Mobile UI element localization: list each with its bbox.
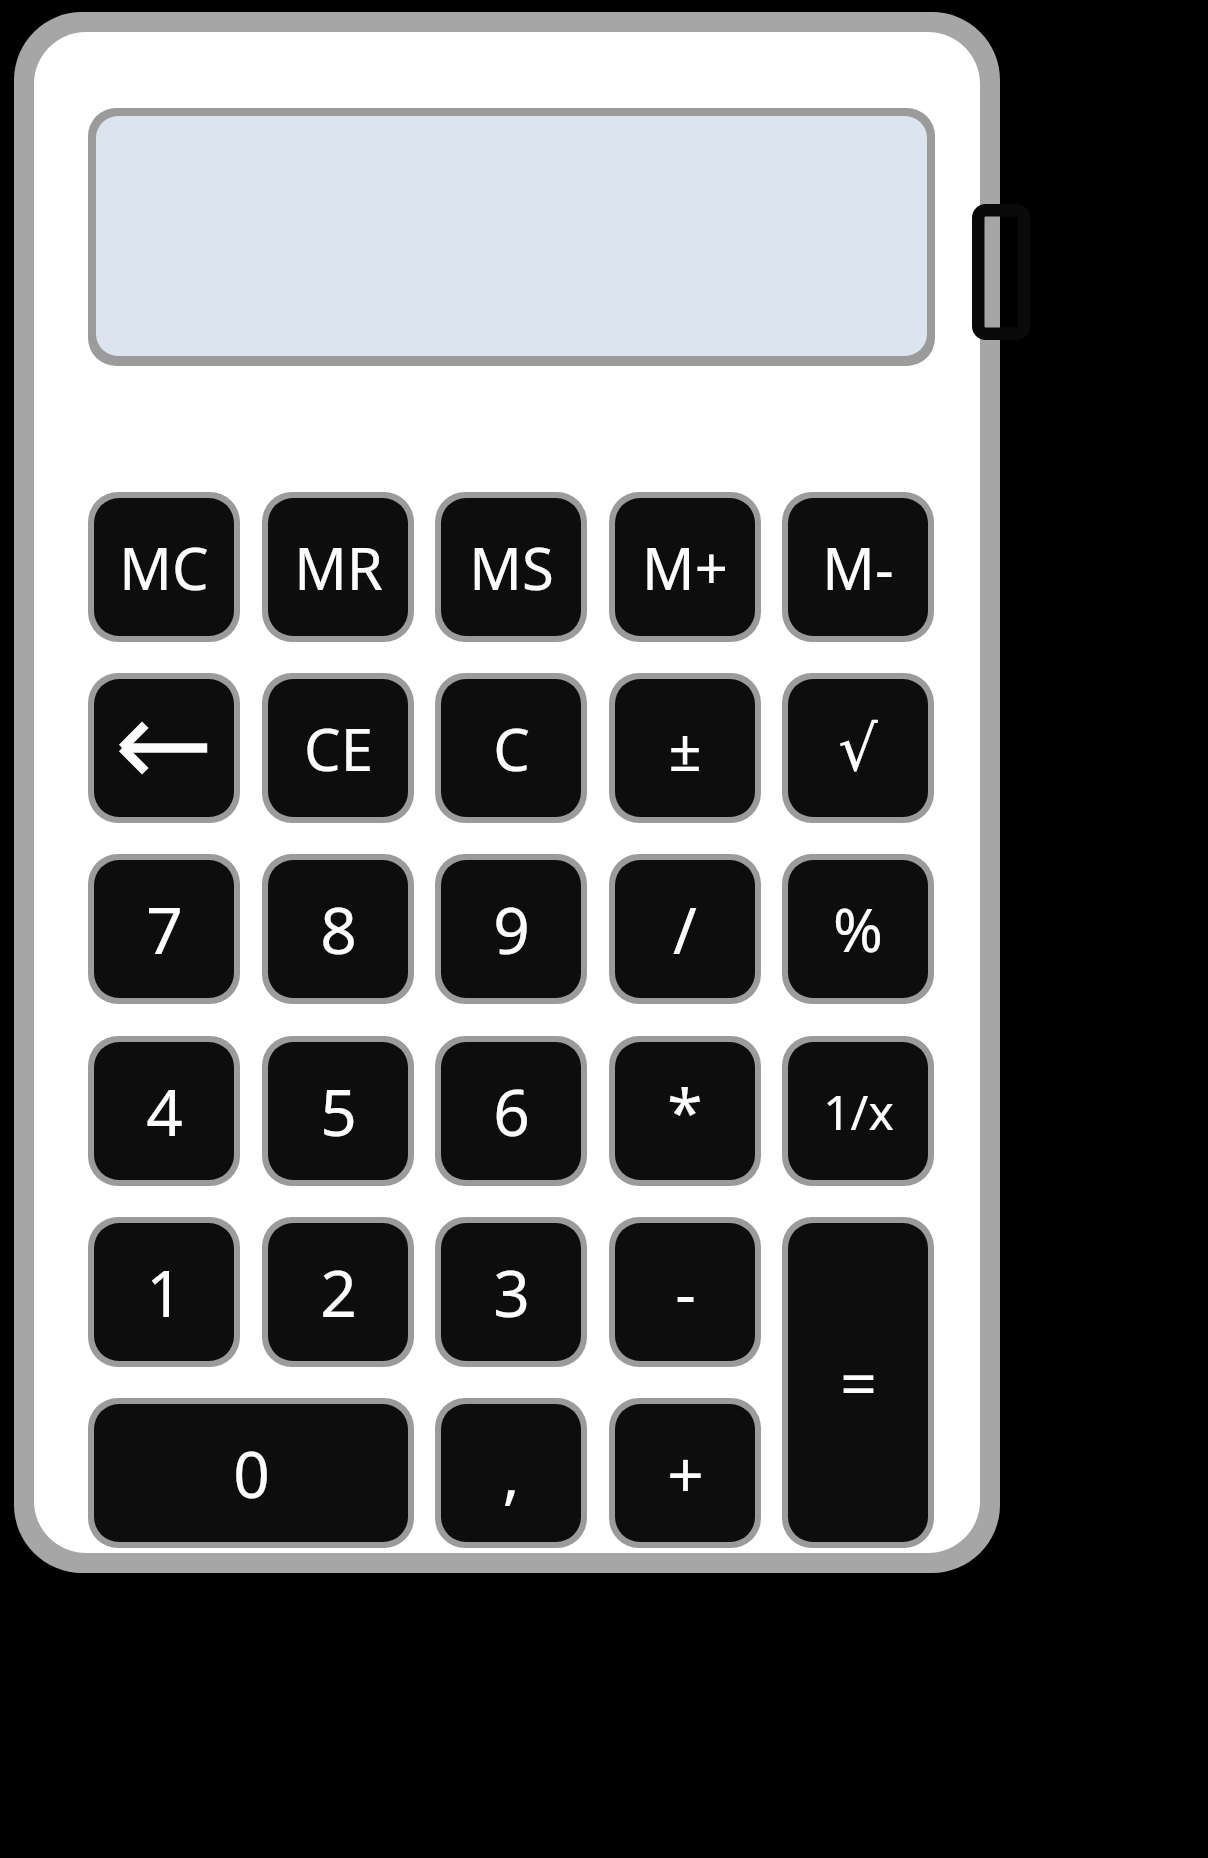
staticText: M- [822, 528, 894, 607]
staticText: ± [668, 709, 702, 788]
staticText: MC [119, 528, 209, 607]
button[interactable]: = [782, 1217, 934, 1548]
button[interactable]: 4 [88, 1036, 240, 1186]
button[interactable]: 3 [435, 1217, 587, 1367]
button[interactable]: 2 [262, 1217, 414, 1367]
button[interactable]: - [609, 1217, 761, 1367]
button[interactable]: √ [782, 673, 934, 823]
staticText: MS [469, 528, 554, 607]
staticText: 1 [146, 1249, 183, 1336]
button[interactable]: 0 [88, 1398, 414, 1548]
button[interactable]: + [609, 1398, 761, 1548]
staticText: 5 [320, 1068, 357, 1155]
staticText: 4 [146, 1068, 183, 1155]
button[interactable]: M+ [609, 492, 761, 642]
button[interactable]: M- [782, 492, 934, 642]
button[interactable]: MR [262, 492, 414, 642]
staticText: - [675, 1249, 696, 1336]
staticText: MR [294, 528, 383, 607]
button[interactable]: / [609, 854, 761, 1004]
staticText: CE [304, 709, 373, 788]
staticText: , [502, 1430, 520, 1517]
button[interactable]: 8 [262, 854, 414, 1004]
button[interactable]: * [609, 1036, 761, 1186]
button[interactable]: MC [88, 492, 240, 642]
staticText: 6 [493, 1068, 530, 1155]
staticText: 8 [320, 886, 357, 973]
staticText: 3 [493, 1249, 530, 1336]
button[interactable]: Backspace [88, 673, 240, 823]
button[interactable]: 5 [262, 1036, 414, 1186]
staticText: C [493, 709, 530, 788]
button[interactable]: C [435, 673, 587, 823]
button[interactable]: 1 [88, 1217, 240, 1367]
button[interactable]: 6 [435, 1036, 587, 1186]
button[interactable]: , [435, 1398, 587, 1548]
button[interactable]: 1/x [782, 1036, 934, 1186]
staticText: 0 [233, 1430, 270, 1517]
staticText: * [667, 1068, 703, 1155]
staticText: M+ [642, 528, 728, 607]
staticText: / [673, 886, 697, 973]
button[interactable]: 9 [435, 854, 587, 1004]
staticText: 7 [146, 886, 183, 973]
staticText: 1/x [823, 1079, 894, 1144]
button[interactable]: CE [262, 673, 414, 823]
staticText: = [840, 1339, 877, 1426]
staticText: 2 [320, 1249, 357, 1336]
button[interactable]: 7 [88, 854, 240, 1004]
button[interactable]: ± [609, 673, 761, 823]
staticText: + [667, 1430, 704, 1517]
button[interactable]: % [782, 854, 934, 1004]
staticText: 9 [493, 886, 530, 973]
staticText: √ [838, 712, 878, 784]
staticText: % [833, 888, 883, 970]
button[interactable]: MS [435, 492, 587, 642]
